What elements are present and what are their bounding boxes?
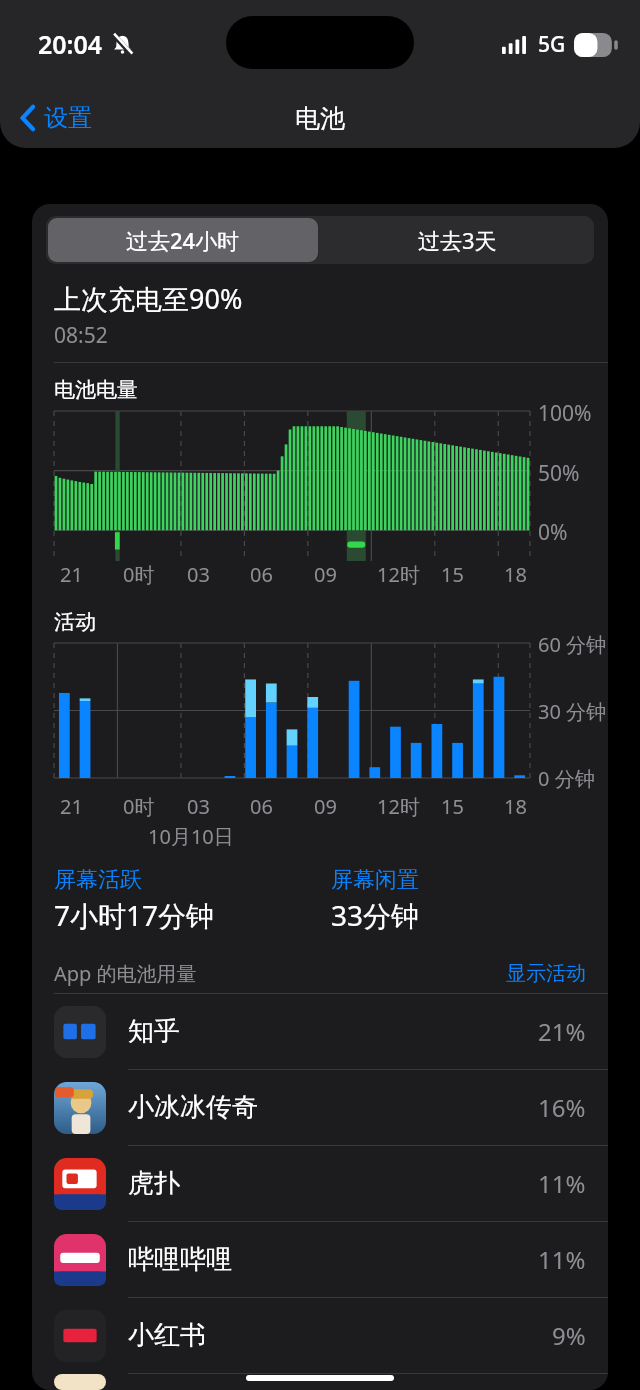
staticText: 18 <box>504 561 527 588</box>
button[interactable]: 过去24小时 <box>48 218 318 262</box>
staticText: 12时 <box>377 561 420 588</box>
staticText: 上次充电至90% <box>54 280 243 317</box>
button[interactable]: 过去3天 <box>320 216 594 264</box>
staticText: 33分钟 <box>331 896 420 934</box>
staticText: 20:04 <box>38 27 103 61</box>
staticText: 09 <box>314 793 337 820</box>
button[interactable]: 哔哩哔哩 <box>32 1222 608 1297</box>
button[interactable]: 小红书 <box>32 1298 608 1373</box>
staticText: 屏幕活跃 <box>54 866 142 894</box>
staticText: 小冰冰传奇 <box>128 1091 258 1124</box>
staticText: 18 <box>504 793 527 820</box>
staticText: 08:52 <box>54 321 108 350</box>
staticText: 100% <box>538 399 592 428</box>
button[interactable]: 知乎 <box>32 994 608 1069</box>
staticText: 0时 <box>123 793 155 820</box>
staticText: 活动 <box>54 609 96 635</box>
button[interactable]: 显示活动 <box>506 961 586 986</box>
staticText: 21 <box>60 561 83 588</box>
staticText: 11% <box>538 1243 586 1276</box>
staticText: 03 <box>187 561 210 588</box>
staticText: 小红书 <box>128 1319 206 1352</box>
staticText: 30 分钟 <box>538 698 607 725</box>
staticText: 60 分钟 <box>538 631 607 658</box>
staticText: 0时 <box>123 561 155 588</box>
staticText: 9% <box>552 1319 586 1352</box>
staticText: 哔哩哔哩 <box>128 1243 232 1276</box>
staticText: 屏幕闲置 <box>331 866 419 894</box>
staticText: 7小时17分钟 <box>54 896 215 934</box>
staticText: 过去24小时 <box>126 225 240 255</box>
staticText: 电池 <box>295 103 345 134</box>
staticText: 12时 <box>377 793 420 820</box>
button[interactable]: 小冰冰传奇 <box>32 1070 608 1145</box>
staticText: App 的电池用量 <box>54 960 197 987</box>
staticText: 09 <box>314 561 337 588</box>
staticText: 电池电量 <box>54 377 138 403</box>
staticText: 0 分钟 <box>538 765 595 792</box>
staticText: 知乎 <box>128 1015 180 1048</box>
staticText: 21% <box>538 1015 586 1048</box>
staticText: 06 <box>250 561 273 588</box>
staticText: 显示活动 <box>506 961 586 986</box>
button[interactable]: 设置 <box>14 97 98 139</box>
staticText: 过去3天 <box>418 225 497 255</box>
staticText: 5G <box>538 30 566 59</box>
staticText: 11% <box>538 1167 586 1200</box>
staticText: 虎扑 <box>128 1167 180 1200</box>
staticText: 06 <box>250 793 273 820</box>
staticText: 设置 <box>44 103 92 133</box>
staticText: 0% <box>538 518 568 547</box>
staticText: 15 <box>441 561 464 588</box>
staticText: 10月10日 <box>148 823 234 850</box>
staticText: 03 <box>187 793 210 820</box>
staticText: 16% <box>538 1091 586 1124</box>
staticText: 50% <box>538 459 580 488</box>
button[interactable]: 虎扑 <box>32 1146 608 1221</box>
staticText: 15 <box>441 793 464 820</box>
staticText: 21 <box>60 793 83 820</box>
